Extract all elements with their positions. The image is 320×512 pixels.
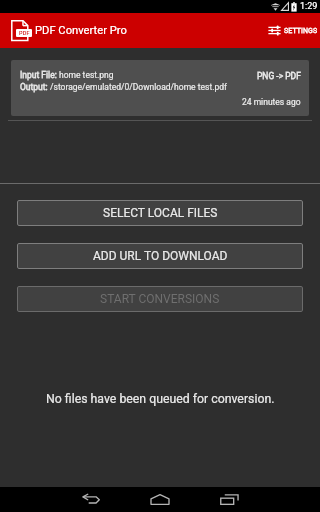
staticText: PDF: [19, 30, 30, 36]
staticText: Output:: [20, 82, 50, 92]
staticText: /storage/emulated/0/Download/home test.p…: [50, 82, 227, 92]
button[interactable]: Home: [137, 487, 183, 512]
staticText: SELECT LOCAL FILES: [103, 206, 218, 220]
staticText: Input File:: [20, 70, 59, 80]
other: Settings: [268, 24, 281, 37]
button[interactable]: SELECT LOCAL FILES: [17, 200, 303, 226]
staticText: START CONVERSIONS: [100, 292, 220, 306]
button[interactable]: START CONVERSIONS: [17, 286, 303, 312]
staticText: PNG -> PDF: [257, 71, 301, 81]
staticText: No files have been queued for conversion…: [46, 392, 275, 406]
staticText: PDF Converter Pro: [35, 24, 127, 37]
staticText: ADD URL TO DOWNLOAD: [93, 249, 228, 263]
button[interactable]: Settings: [266, 18, 320, 43]
staticText: SETTINGS: [284, 27, 318, 35]
staticText: 1:29: [300, 1, 318, 12]
button[interactable]: ADD URL TO DOWNLOAD: [17, 243, 303, 269]
staticText: 24 minutes ago: [242, 97, 301, 107]
button[interactable]: Input File:: [11, 60, 309, 116]
button[interactable]: Recent apps: [206, 487, 252, 512]
button[interactable]: Back: [68, 487, 114, 512]
staticText: home test.png: [59, 70, 114, 80]
